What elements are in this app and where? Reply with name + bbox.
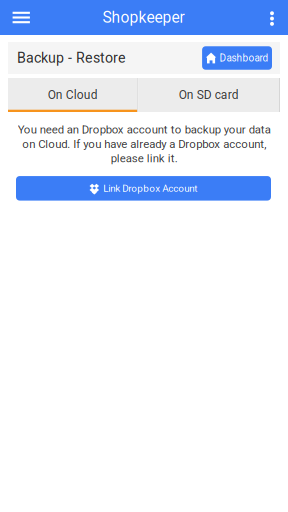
staticText: Link Dropbox Account	[103, 182, 197, 194]
button[interactable]: On Cloud	[8, 78, 137, 112]
button[interactable]: Open navigation menu	[0, 0, 42, 35]
staticText: On Cloud	[48, 88, 98, 102]
staticText: On SD card	[179, 88, 239, 102]
staticText: You need an Dropbox account to backup yo…	[17, 123, 270, 165]
button[interactable]: Dashboard	[202, 46, 272, 70]
staticText: Dashboard	[219, 52, 268, 64]
staticText: Backup - Restore	[17, 50, 126, 66]
button[interactable]: More options	[256, 0, 288, 35]
staticText: Shopkeeper	[102, 8, 184, 27]
button[interactable]: On SD card	[138, 78, 279, 112]
button[interactable]: Link Dropbox Account	[16, 176, 271, 201]
